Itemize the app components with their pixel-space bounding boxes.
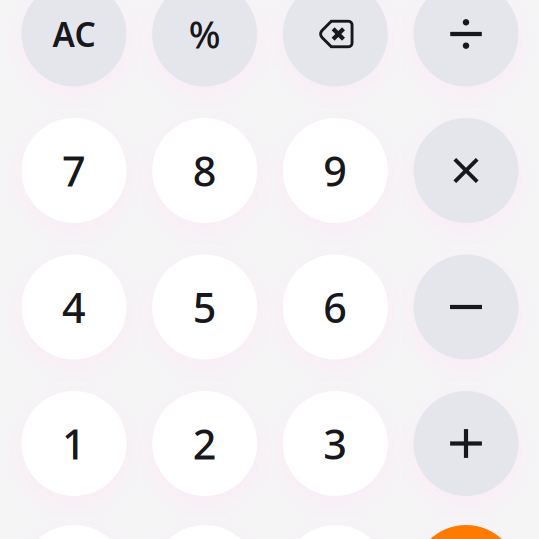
button[interactable]: 6 <box>283 254 388 359</box>
button[interactable]: Multiply <box>413 118 518 223</box>
button[interactable]: 2 <box>152 391 257 496</box>
button[interactable]: 1 <box>21 391 126 496</box>
button[interactable]: 8 <box>152 118 257 223</box>
button[interactable]: 3 <box>283 391 388 496</box>
button[interactable]: ± <box>21 525 126 539</box>
button[interactable]: Divide <box>413 0 518 86</box>
button[interactable]: Subtract <box>413 254 518 359</box>
button[interactable]: 5 <box>152 254 257 359</box>
button[interactable]: 4 <box>21 254 126 359</box>
button[interactable]: Add <box>413 391 518 496</box>
button[interactable]: . <box>283 525 388 539</box>
staticText: AC <box>52 12 95 56</box>
staticText: 6 <box>323 280 347 334</box>
button[interactable]: 9 <box>283 118 388 223</box>
staticText: 4 <box>62 280 86 334</box>
button[interactable]: % <box>152 0 257 86</box>
staticText: % <box>189 9 221 59</box>
staticText: 3 <box>323 416 347 471</box>
button[interactable]: AC <box>21 0 126 86</box>
button[interactable]: 7 <box>21 118 126 223</box>
staticText: 9 <box>323 143 347 198</box>
staticText: 1 <box>62 416 86 471</box>
button[interactable]: 0 <box>152 525 257 539</box>
button[interactable]: Equals <box>413 525 518 539</box>
staticText: 2 <box>193 416 217 471</box>
button[interactable]: Delete <box>283 0 388 86</box>
staticText: 7 <box>62 143 86 198</box>
staticText: 5 <box>193 280 217 334</box>
staticText: 8 <box>193 143 217 198</box>
